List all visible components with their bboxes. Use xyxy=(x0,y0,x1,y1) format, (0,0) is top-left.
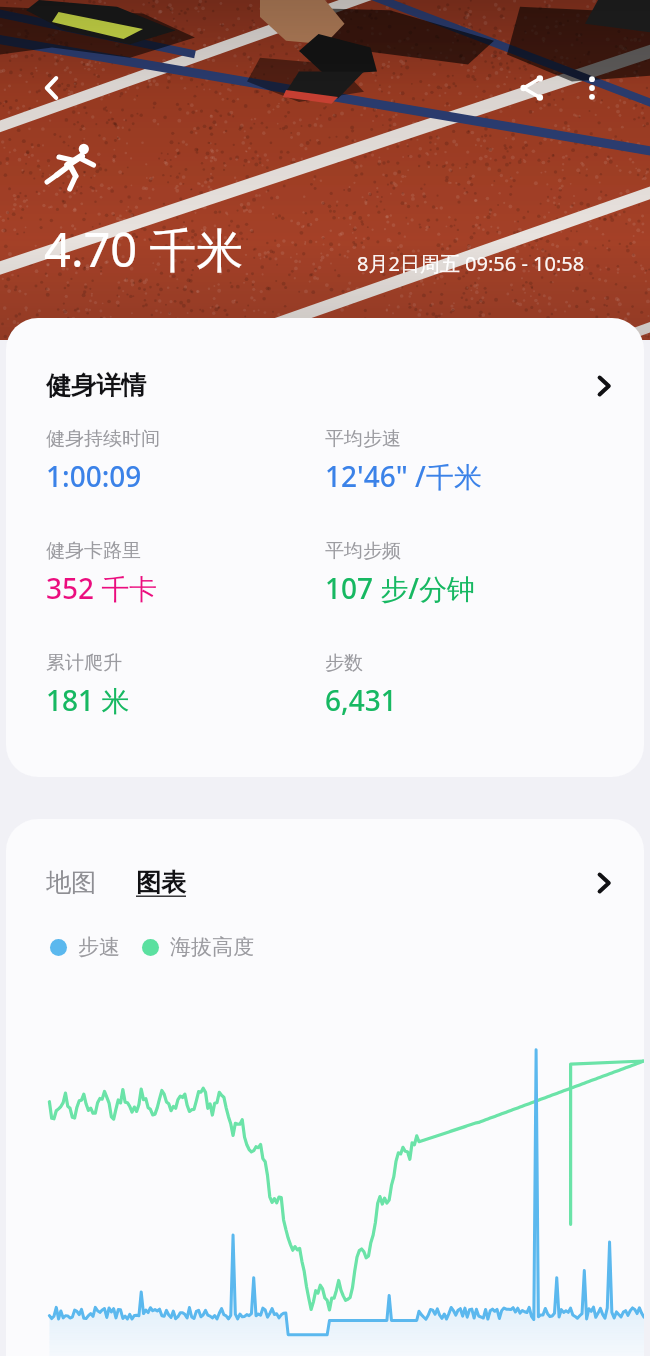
staticText: 图表 xyxy=(136,867,186,898)
button[interactable]: Share xyxy=(506,62,558,114)
staticText: 8月2日周五 09:56 - 10:58 xyxy=(357,250,585,277)
staticText: 健身持续时间 xyxy=(46,427,160,451)
staticText: 平均步频 xyxy=(325,539,401,563)
staticText: 健身卡路里 xyxy=(46,539,141,563)
staticText: 累计爬升 xyxy=(46,651,122,675)
staticText: 6,431 xyxy=(325,681,397,719)
staticText: 181 米 xyxy=(46,681,130,719)
button[interactable]: Back xyxy=(26,62,78,114)
button[interactable]: 健身详情 xyxy=(6,318,644,427)
staticText: 步数 xyxy=(325,651,363,675)
button[interactable]: 地图 xyxy=(46,867,102,898)
staticText: 步速 xyxy=(78,934,120,960)
button[interactable]: 图表 xyxy=(136,867,186,898)
staticText: 平均步速 xyxy=(325,427,401,451)
staticText: 107 步/分钟 xyxy=(325,569,476,607)
staticText: 12'46" /千米 xyxy=(325,457,482,495)
staticText: 海拔高度 xyxy=(170,934,254,960)
staticText: 1:00:09 xyxy=(46,457,142,495)
staticText: 地图 xyxy=(46,867,96,898)
staticText: 352 千卡 xyxy=(46,569,158,607)
staticText: 4.70 千米 xyxy=(44,217,244,281)
staticText: 健身详情 xyxy=(46,370,146,401)
button[interactable]: More options xyxy=(566,62,618,114)
